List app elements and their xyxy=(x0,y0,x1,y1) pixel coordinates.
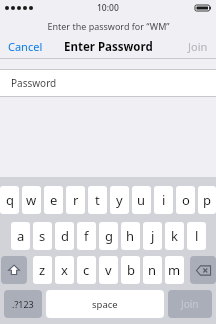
button[interactable]: Join xyxy=(180,34,216,59)
staticText: Enter Password xyxy=(64,39,153,55)
button[interactable]: r xyxy=(66,186,85,214)
button[interactable]: s xyxy=(33,222,52,250)
staticText: k xyxy=(171,227,178,245)
staticText: h xyxy=(126,227,135,245)
button[interactable]: Delete xyxy=(190,256,216,284)
button[interactable]: k xyxy=(165,222,184,250)
staticText: space xyxy=(92,298,118,311)
staticText: y xyxy=(116,191,123,209)
staticText: g xyxy=(105,227,113,245)
button[interactable]: b xyxy=(121,256,140,284)
button[interactable]: e xyxy=(44,186,63,214)
button[interactable]: y xyxy=(110,186,129,214)
button[interactable]: h xyxy=(121,222,140,250)
staticText: q xyxy=(6,191,14,209)
button[interactable]: a xyxy=(11,222,30,250)
button[interactable]: c xyxy=(77,256,96,284)
button[interactable]: d xyxy=(55,222,74,250)
staticText: f xyxy=(84,227,89,245)
staticText: s xyxy=(39,227,46,245)
button[interactable]: w xyxy=(22,186,41,214)
button[interactable]: Password xyxy=(0,70,216,96)
button[interactable]: o xyxy=(176,186,195,214)
staticText: p xyxy=(203,191,211,209)
staticText: v xyxy=(105,261,112,279)
staticText: r xyxy=(73,191,79,209)
button[interactable]: Cancel xyxy=(0,34,51,59)
button[interactable]: t xyxy=(88,186,107,214)
staticText: Join xyxy=(188,39,208,54)
staticText: c xyxy=(83,261,90,279)
staticText: Join xyxy=(181,297,199,311)
staticText: u xyxy=(137,191,146,209)
button[interactable]: .?123 xyxy=(4,290,42,318)
staticText: e xyxy=(50,191,58,209)
button[interactable]: Join xyxy=(168,290,212,318)
staticText: Cancel xyxy=(8,39,43,54)
staticText: z xyxy=(39,261,46,279)
staticText: Password xyxy=(11,76,57,90)
button[interactable]: z xyxy=(33,256,52,284)
staticText: l xyxy=(195,227,199,245)
button[interactable]: f xyxy=(77,222,96,250)
staticText: b xyxy=(127,261,135,279)
button[interactable]: g xyxy=(99,222,118,250)
staticText: o xyxy=(182,191,190,209)
button[interactable]: i xyxy=(154,186,173,214)
button[interactable]: n xyxy=(143,256,162,284)
button[interactable]: p xyxy=(198,186,216,214)
staticText: n xyxy=(148,261,157,279)
button[interactable]: space xyxy=(46,290,164,318)
button[interactable]: l xyxy=(187,222,206,250)
staticText: .?123 xyxy=(12,298,34,310)
button[interactable]: m xyxy=(165,256,184,284)
button[interactable]: j xyxy=(143,222,162,250)
staticText: d xyxy=(61,227,69,245)
button[interactable]: v xyxy=(99,256,118,284)
staticText: Enter the password for “WM” xyxy=(47,20,170,32)
button[interactable]: u xyxy=(132,186,151,214)
staticText: t xyxy=(95,191,100,209)
staticText: x xyxy=(61,261,68,279)
button[interactable]: x xyxy=(55,256,74,284)
staticText: i xyxy=(162,191,166,209)
staticText: 10:00 xyxy=(97,2,119,14)
staticText: a xyxy=(17,227,25,245)
staticText: j xyxy=(151,227,155,245)
staticText: m xyxy=(168,261,181,279)
staticText: w xyxy=(26,191,37,209)
button[interactable]: q xyxy=(0,186,19,214)
button[interactable]: Shift xyxy=(1,256,27,284)
